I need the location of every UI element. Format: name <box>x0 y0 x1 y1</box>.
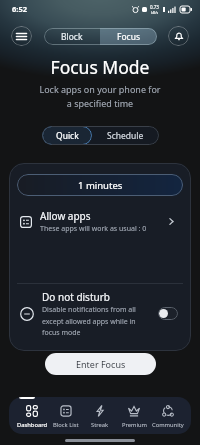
button[interactable]: Notifications <box>168 26 189 46</box>
button[interactable]: Streak <box>83 397 117 434</box>
staticText: Focus <box>117 31 140 43</box>
staticText: Lock apps on your phone for a specified … <box>0 83 200 110</box>
staticText: Streak <box>91 421 109 429</box>
button[interactable]: 1 minutes <box>17 174 183 196</box>
button[interactable]: Dashboard <box>15 397 49 434</box>
staticText: Focus Mode <box>0 55 200 79</box>
staticText: Disable notifications from all except al… <box>42 305 136 337</box>
button[interactable]: Quick <box>42 126 92 145</box>
staticText: Block <box>61 31 83 43</box>
staticText: Schedule <box>107 130 144 142</box>
staticText: Allow apps <box>40 209 91 223</box>
button[interactable]: Focus <box>100 28 157 45</box>
button[interactable]: Block <box>44 28 100 45</box>
staticText: Community <box>152 421 184 429</box>
staticText: Enter Focus <box>76 358 126 370</box>
button[interactable]: Enter Focus <box>45 353 156 375</box>
staticText: These apps will work as usual : 0 <box>40 224 147 234</box>
staticText: 0.73 <box>150 4 159 10</box>
button[interactable]: Community <box>151 397 185 434</box>
staticText: Premium <box>122 421 147 429</box>
button[interactable]: Schedule <box>92 126 159 145</box>
button[interactable]: Allow apps <box>17 209 183 234</box>
button[interactable]: Block List <box>49 397 83 434</box>
staticText: kB/s <box>151 10 159 15</box>
staticText: 1 minutes <box>78 179 123 192</box>
button[interactable]: Menu <box>11 26 32 46</box>
staticText: Block List <box>53 421 79 429</box>
button[interactable]: Premium <box>117 397 151 434</box>
staticText: 6:52 <box>12 4 27 14</box>
button[interactable]: Do not disturb toggle <box>158 307 178 320</box>
staticText: Quick <box>56 130 79 142</box>
staticText: Dashboard <box>17 421 48 429</box>
staticText: Do not disturb <box>42 290 110 304</box>
